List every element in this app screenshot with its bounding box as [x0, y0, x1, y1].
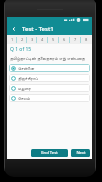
- staticText: 2: [21, 37, 24, 42]
- button[interactable]: 5: [48, 35, 59, 44]
- staticText: சேலம்: [18, 96, 31, 100]
- staticText: 1: [11, 37, 14, 42]
- staticText: Q 1 of 15: [10, 46, 32, 53]
- staticText: 5: [52, 37, 55, 42]
- staticText: 3: [31, 37, 34, 42]
- button[interactable]: Back: [7, 22, 20, 35]
- staticText: சென்னை: [18, 66, 35, 70]
- button[interactable]: சென்னை: [9, 64, 90, 72]
- button[interactable]: 3: [27, 35, 37, 44]
- staticText: மதுரை: [18, 86, 31, 90]
- staticText: 6: [63, 37, 66, 42]
- staticText: 7: [74, 37, 77, 42]
- button[interactable]: 2: [17, 35, 27, 44]
- staticText: Next: [76, 150, 86, 156]
- staticText: தமிழ்நாட்டின் தலைநகரம் எது என்பதை: [10, 55, 85, 61]
- staticText: 8: [85, 37, 88, 42]
- button[interactable]: 1: [7, 35, 17, 44]
- button[interactable]: சேலம்: [9, 94, 90, 102]
- button[interactable]: 4: [37, 35, 48, 44]
- staticText: Test - Test1: [22, 25, 54, 33]
- button[interactable]: 7: [70, 35, 81, 44]
- staticText: End Test: [41, 150, 58, 156]
- staticText: திருச்சிராப்: [18, 76, 38, 80]
- button[interactable]: திருச்சிராப்: [9, 74, 90, 82]
- button[interactable]: மதுரை: [9, 84, 90, 92]
- button[interactable]: End Test: [31, 149, 68, 157]
- button[interactable]: 8: [81, 35, 92, 44]
- staticText: 4: [41, 37, 44, 42]
- button[interactable]: Next: [71, 149, 90, 157]
- button[interactable]: 6: [59, 35, 70, 44]
